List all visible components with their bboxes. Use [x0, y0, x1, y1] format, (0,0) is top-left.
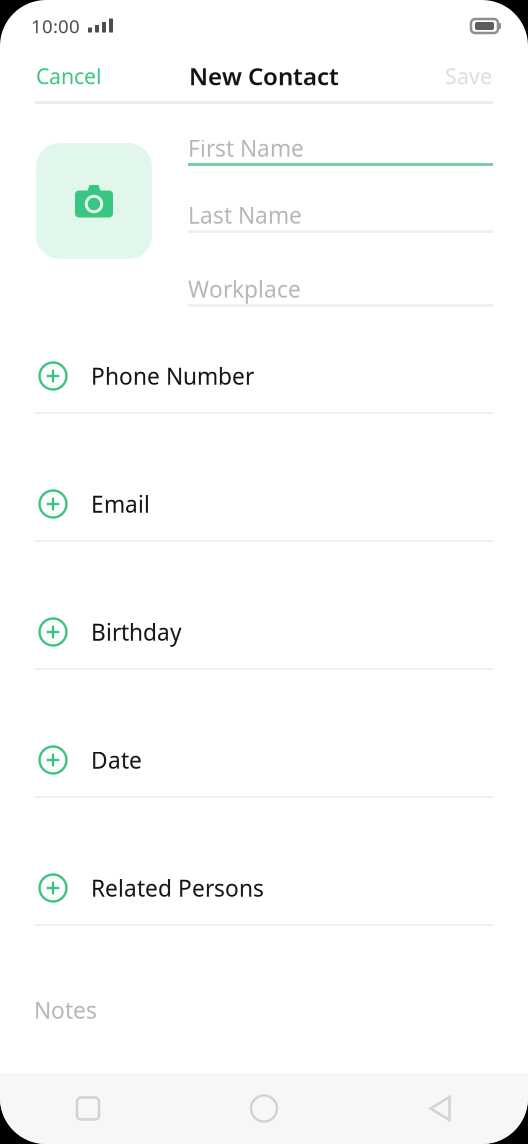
button[interactable]: Workplace	[188, 274, 493, 307]
button[interactable]: Related Persons	[0, 860, 528, 916]
staticText: Notes	[34, 995, 97, 1025]
staticText: 10:00	[31, 14, 80, 38]
button[interactable]: Cancel	[24, 52, 114, 100]
staticText: Phone Number	[91, 361, 254, 391]
button[interactable]: Date	[0, 732, 528, 788]
button[interactable]: Home	[176, 1073, 352, 1144]
staticText: First Name	[188, 133, 304, 163]
button[interactable]: Email	[0, 476, 528, 532]
staticText: Date	[91, 745, 142, 775]
staticText: Save	[445, 62, 492, 90]
staticText: Last Name	[188, 200, 302, 230]
staticText: Email	[91, 489, 150, 519]
button[interactable]: Birthday	[0, 604, 528, 660]
button[interactable]: Recent apps	[0, 1073, 176, 1144]
staticText: Related Persons	[91, 873, 264, 903]
staticText: Cancel	[36, 62, 102, 90]
button[interactable]: Last Name	[188, 200, 493, 233]
button[interactable]: Add photo	[36, 143, 152, 259]
staticText: Workplace	[188, 274, 301, 304]
staticText: Birthday	[91, 617, 182, 647]
button[interactable]: Notes	[0, 980, 528, 1040]
button[interactable]: Phone Number	[0, 348, 528, 404]
button[interactable]: First Name	[188, 133, 493, 166]
button[interactable]: Back	[352, 1073, 528, 1144]
button[interactable]: Save	[433, 52, 504, 100]
staticText: New Contact	[189, 60, 339, 92]
